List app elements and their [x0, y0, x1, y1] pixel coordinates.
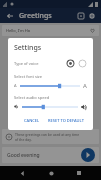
button[interactable]: Hello, I'm Ho: [2, 25, 99, 36]
button[interactable]: A: [14, 81, 87, 90]
staticText: These greetings can be used at any time: [15, 132, 80, 137]
button[interactable]: Settings: [86, 10, 97, 21]
staticText: Select audio speed: [14, 95, 50, 100]
button[interactable]: CANCEL: [21, 116, 43, 125]
button[interactable]: Back: [16, 167, 28, 179]
staticText: CANCEL: [24, 118, 40, 123]
staticText: Greetings: [19, 11, 52, 21]
button[interactable]: Home: [45, 167, 57, 179]
button[interactable]: Good evening: [2, 147, 99, 163]
button[interactable]: [14, 102, 87, 111]
button[interactable]: Male voice: [66, 59, 75, 68]
staticText: A: [14, 83, 17, 88]
staticText: of the day.: [15, 137, 32, 142]
button[interactable]: Back: [4, 10, 15, 21]
staticText: A: [83, 82, 87, 90]
button[interactable]: Recents: [73, 167, 85, 179]
button[interactable]: Female voice: [78, 59, 87, 68]
staticText: Type of voice: [14, 61, 66, 66]
staticText: Hello, I'm Ho: [6, 28, 90, 33]
button[interactable]: RESET TO DEFAULT: [45, 116, 87, 125]
button[interactable]: Night mode: [75, 10, 86, 21]
staticText: Select font size: [14, 74, 42, 79]
staticText: Good evening: [7, 152, 40, 159]
button[interactable]: These greetings can be used at any time: [6, 129, 95, 144]
button[interactable]: Play: [81, 148, 95, 162]
staticText: RESET TO DEFAULT: [48, 118, 84, 123]
staticText: Settings: [14, 43, 42, 53]
